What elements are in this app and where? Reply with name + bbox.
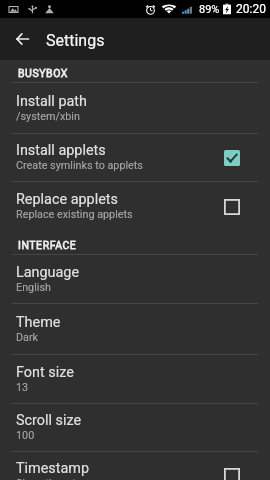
button[interactable]: Font size xyxy=(0,355,270,404)
staticText: Replace existing applets xyxy=(16,208,133,221)
button[interactable]: Unchecked xyxy=(221,465,243,480)
staticText: Scroll size xyxy=(16,412,82,429)
staticText: Theme xyxy=(16,314,61,331)
button[interactable]: Scroll size xyxy=(0,404,270,452)
staticText: Timestamp xyxy=(16,460,90,477)
staticText: 13 xyxy=(16,381,29,394)
button[interactable]: Language xyxy=(0,255,270,304)
button[interactable]: Checked xyxy=(221,147,243,169)
staticText: Install path xyxy=(16,93,87,110)
staticText: Font size xyxy=(16,364,74,381)
staticText: Create symlinks to applets xyxy=(16,159,143,172)
staticText: INTERFACE xyxy=(18,239,77,251)
button[interactable]: Unchecked xyxy=(221,196,243,218)
button[interactable]: Theme xyxy=(0,304,270,355)
staticText: Replace applets xyxy=(16,191,118,208)
staticText: 100 xyxy=(16,429,35,442)
staticText: Show timestamp xyxy=(16,477,98,480)
button[interactable]: Install applets xyxy=(0,134,270,182)
staticText: Install applets xyxy=(16,142,106,159)
button[interactable]: Timestamp xyxy=(0,451,270,480)
staticText: Settings xyxy=(46,31,105,50)
staticText: BUSYBOX xyxy=(18,67,68,79)
button[interactable]: Replace applets xyxy=(0,182,270,232)
staticText: 89% xyxy=(199,3,220,16)
staticText: /system/xbin xyxy=(16,110,80,123)
button[interactable]: Install path xyxy=(0,83,270,134)
staticText: 20:20 xyxy=(236,2,266,16)
staticText: Dark xyxy=(16,331,39,344)
staticText: English xyxy=(16,281,51,294)
staticText: Language xyxy=(16,264,80,281)
button[interactable]: Navigate up xyxy=(0,18,44,60)
